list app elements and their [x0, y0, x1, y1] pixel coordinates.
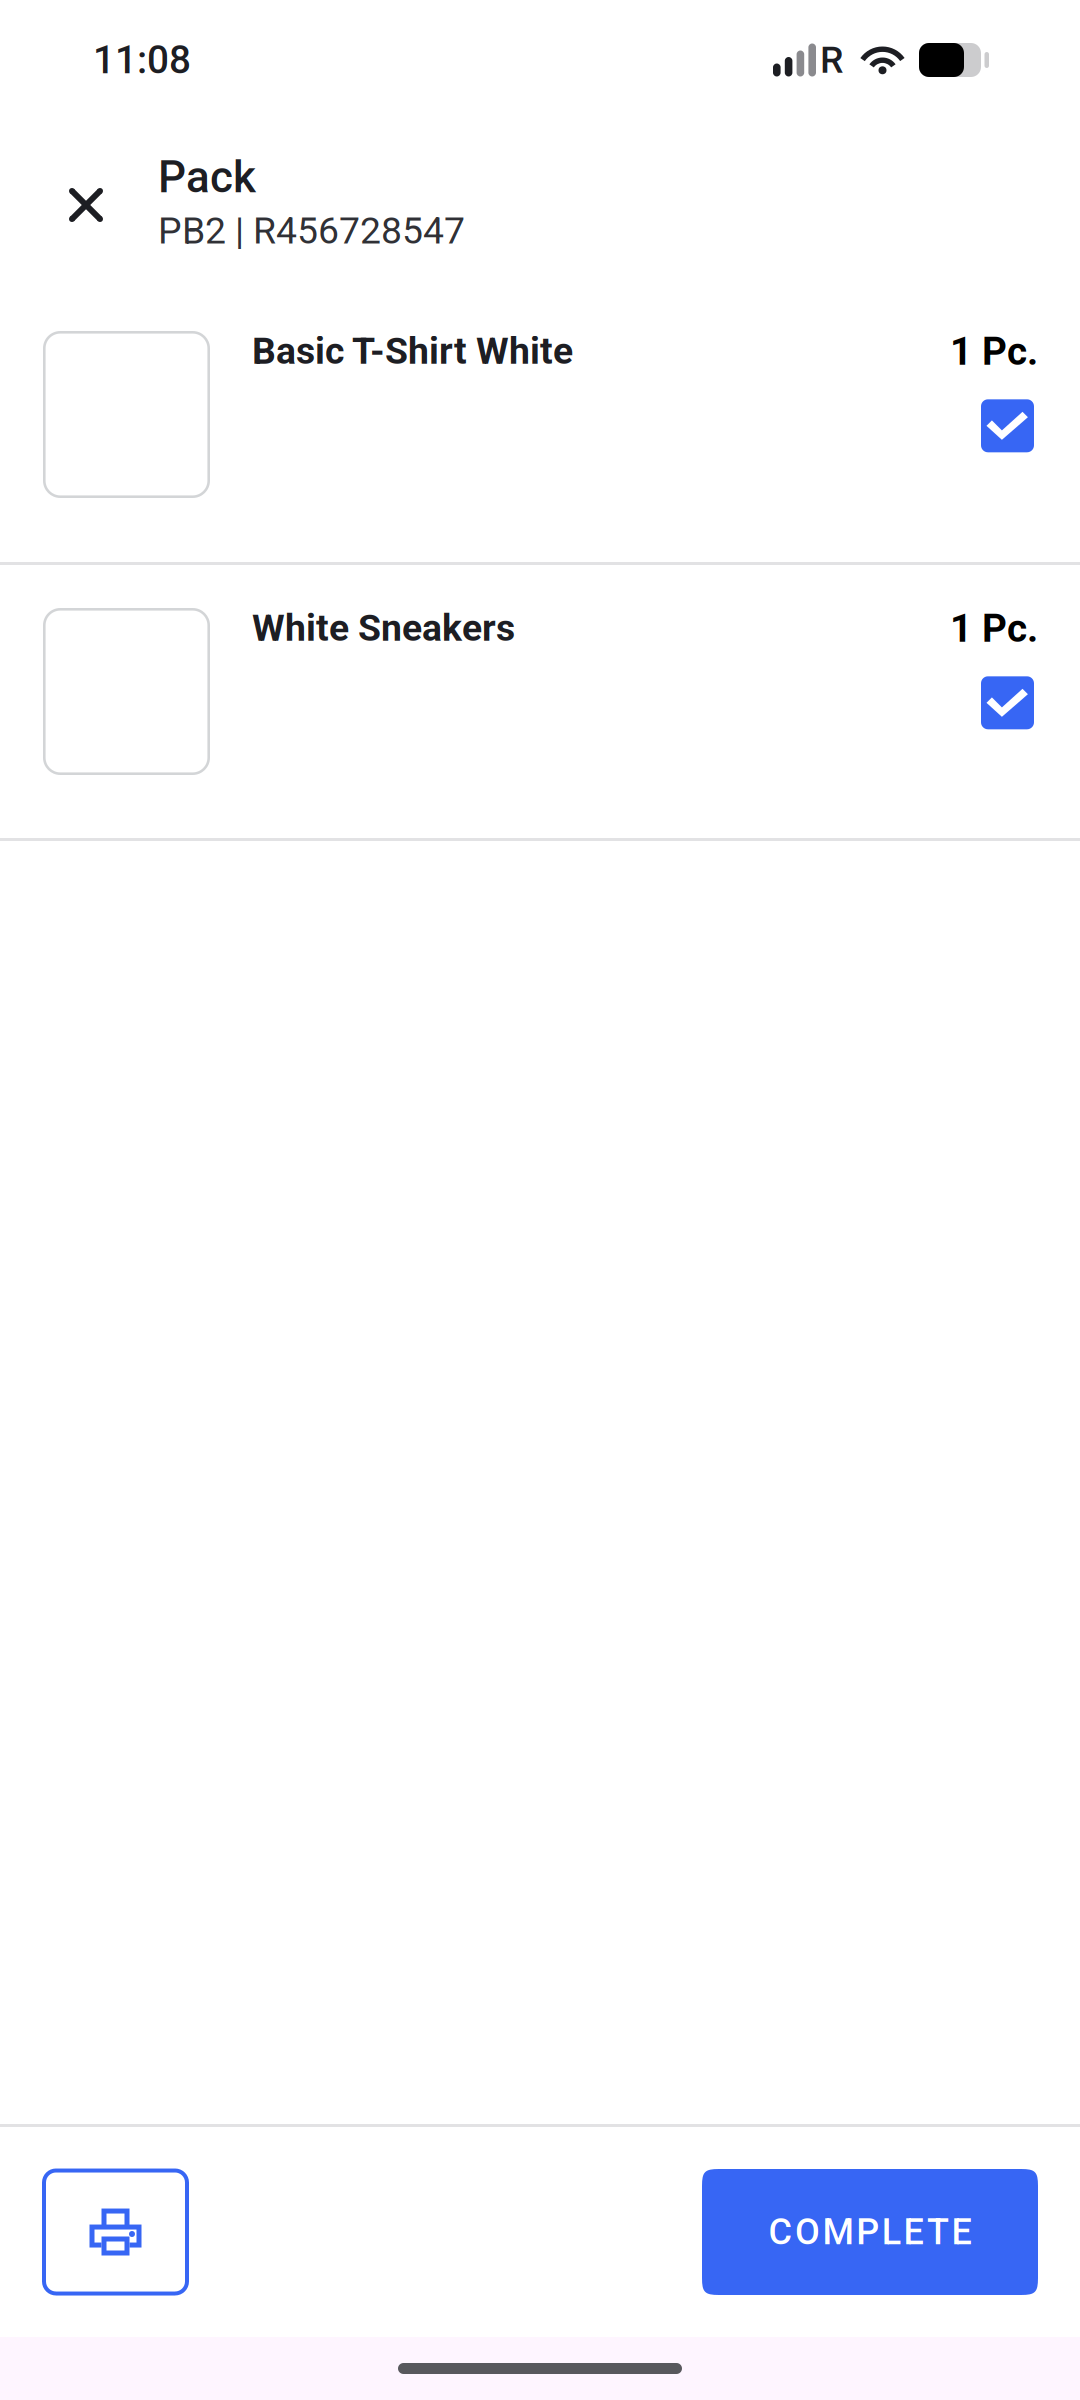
button[interactable]: Basic T-Shirt White — [0, 292, 1080, 565]
button[interactable]: COMPLETE — [702, 2169, 1038, 2295]
button[interactable]: Print — [42, 2168, 189, 2295]
staticText: R — [820, 38, 843, 82]
staticText: White Sneakers — [252, 606, 515, 650]
staticText: 1 Pc. — [950, 606, 1038, 651]
button[interactable]: White Sneakers — [0, 565, 1080, 841]
staticText: 11:08 — [93, 37, 191, 83]
staticText: Basic T-Shirt White — [252, 329, 573, 373]
staticText: COMPLETE — [768, 2211, 972, 2253]
staticText: PB2 | R456728547 — [158, 209, 465, 253]
staticText: 1 Pc. — [950, 329, 1038, 374]
button[interactable]: Close — [40, 153, 132, 251]
staticText: Pack — [158, 151, 256, 203]
